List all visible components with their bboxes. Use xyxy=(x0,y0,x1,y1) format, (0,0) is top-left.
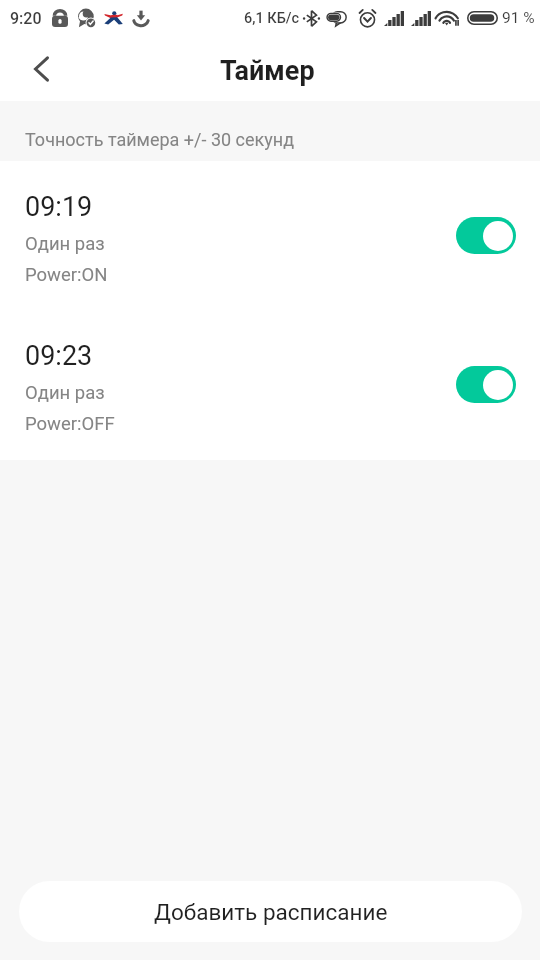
button[interactable]: 09:19 xyxy=(0,161,540,310)
staticText: Точность таймера +/- 30 секунд xyxy=(25,129,295,150)
staticText: Power:OFF xyxy=(25,413,115,435)
staticText: 09:23 xyxy=(25,340,93,372)
button[interactable]: 09:23 xyxy=(0,310,540,459)
button[interactable]: Back xyxy=(18,46,64,92)
staticText: 6,1 КБ/с xyxy=(244,10,300,27)
staticText: 91 % xyxy=(502,9,535,27)
staticText: 9:20 xyxy=(10,9,42,28)
staticText: Добавить расписание xyxy=(154,899,388,925)
staticText: Один раз xyxy=(25,233,105,255)
staticText: Power:ON xyxy=(25,264,108,286)
button[interactable]: Toggle alarm xyxy=(456,366,516,403)
staticText: 09:19 xyxy=(25,191,93,223)
button[interactable]: Toggle alarm xyxy=(456,217,516,254)
button[interactable]: Добавить расписание xyxy=(19,881,522,942)
staticText: Таймер xyxy=(220,55,315,87)
staticText: Один раз xyxy=(25,382,105,404)
